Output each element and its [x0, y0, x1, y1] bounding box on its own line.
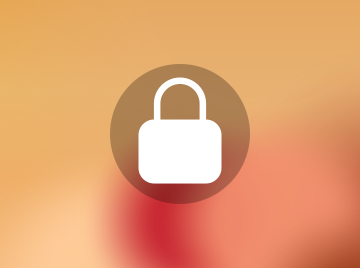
button[interactable]: Locked content	[110, 64, 250, 204]
